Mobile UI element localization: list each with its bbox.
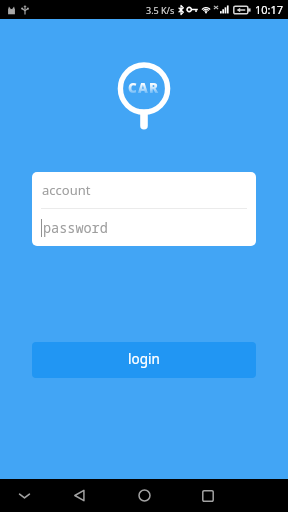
staticText: login xyxy=(128,350,160,368)
button[interactable]: Hide keyboard xyxy=(7,479,41,512)
button[interactable]: Recents xyxy=(191,479,225,512)
staticText: password xyxy=(43,219,108,237)
staticText: 10:17 xyxy=(255,2,284,17)
button[interactable]: password xyxy=(32,209,256,246)
button[interactable]: Home xyxy=(127,479,161,512)
staticText: 3.5 K/s xyxy=(146,4,175,16)
button[interactable]: Back xyxy=(62,479,96,512)
staticText: account xyxy=(42,181,91,199)
button[interactable]: account xyxy=(32,172,256,208)
staticText: CAR xyxy=(128,79,160,97)
button[interactable]: login xyxy=(32,342,256,378)
